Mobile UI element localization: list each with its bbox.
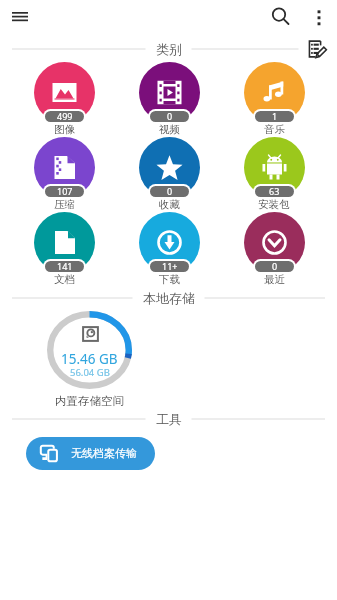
button[interactable]: 141 xyxy=(29,212,99,287)
staticText: 文档 xyxy=(54,273,75,286)
staticText: 1 xyxy=(272,111,278,122)
staticText: 工具 xyxy=(156,409,182,429)
staticText: 音乐 xyxy=(264,123,285,136)
staticText: 视频 xyxy=(159,123,180,136)
staticText: 107 xyxy=(57,186,73,197)
button[interactable]: Edit categories xyxy=(305,39,329,59)
button[interactable]: 无线档案传输 xyxy=(26,437,155,470)
button[interactable]: 11+ xyxy=(134,212,204,287)
staticText: 499 xyxy=(57,111,73,122)
staticText: 无线档案传输 xyxy=(71,447,137,461)
staticText: 压缩 xyxy=(54,198,75,211)
staticText: 收藏 xyxy=(159,198,180,211)
button[interactable]: 15.46 GB xyxy=(47,311,132,389)
button[interactable]: 499 xyxy=(29,62,99,137)
staticText: 安装包 xyxy=(258,198,290,211)
staticText: 56.04 GB xyxy=(70,363,110,379)
button[interactable]: 0 xyxy=(134,62,204,137)
staticText: 141 xyxy=(57,261,73,272)
staticText: 图像 xyxy=(54,123,75,136)
staticText: 11+ xyxy=(162,261,178,272)
staticText: 下载 xyxy=(159,273,180,286)
button[interactable]: 1 xyxy=(239,62,309,137)
staticText: 63 xyxy=(269,186,280,197)
button[interactable]: 107 xyxy=(29,137,99,212)
button[interactable]: Menu xyxy=(4,1,36,33)
staticText: 0 xyxy=(167,111,173,122)
staticText: 15.46 GB xyxy=(61,348,118,368)
button[interactable]: 63 xyxy=(239,137,309,212)
button[interactable]: More options xyxy=(303,1,335,33)
button[interactable]: 0 xyxy=(239,212,309,287)
button[interactable]: 0 xyxy=(134,137,204,212)
staticText: 0 xyxy=(167,186,173,197)
button[interactable]: Search xyxy=(265,1,297,33)
staticText: 本地存储 xyxy=(143,288,195,308)
staticText: 最近 xyxy=(264,273,285,286)
staticText: 内置存储空间 xyxy=(55,390,124,410)
staticText: 类别 xyxy=(156,39,182,59)
staticText: 0 xyxy=(272,261,278,272)
